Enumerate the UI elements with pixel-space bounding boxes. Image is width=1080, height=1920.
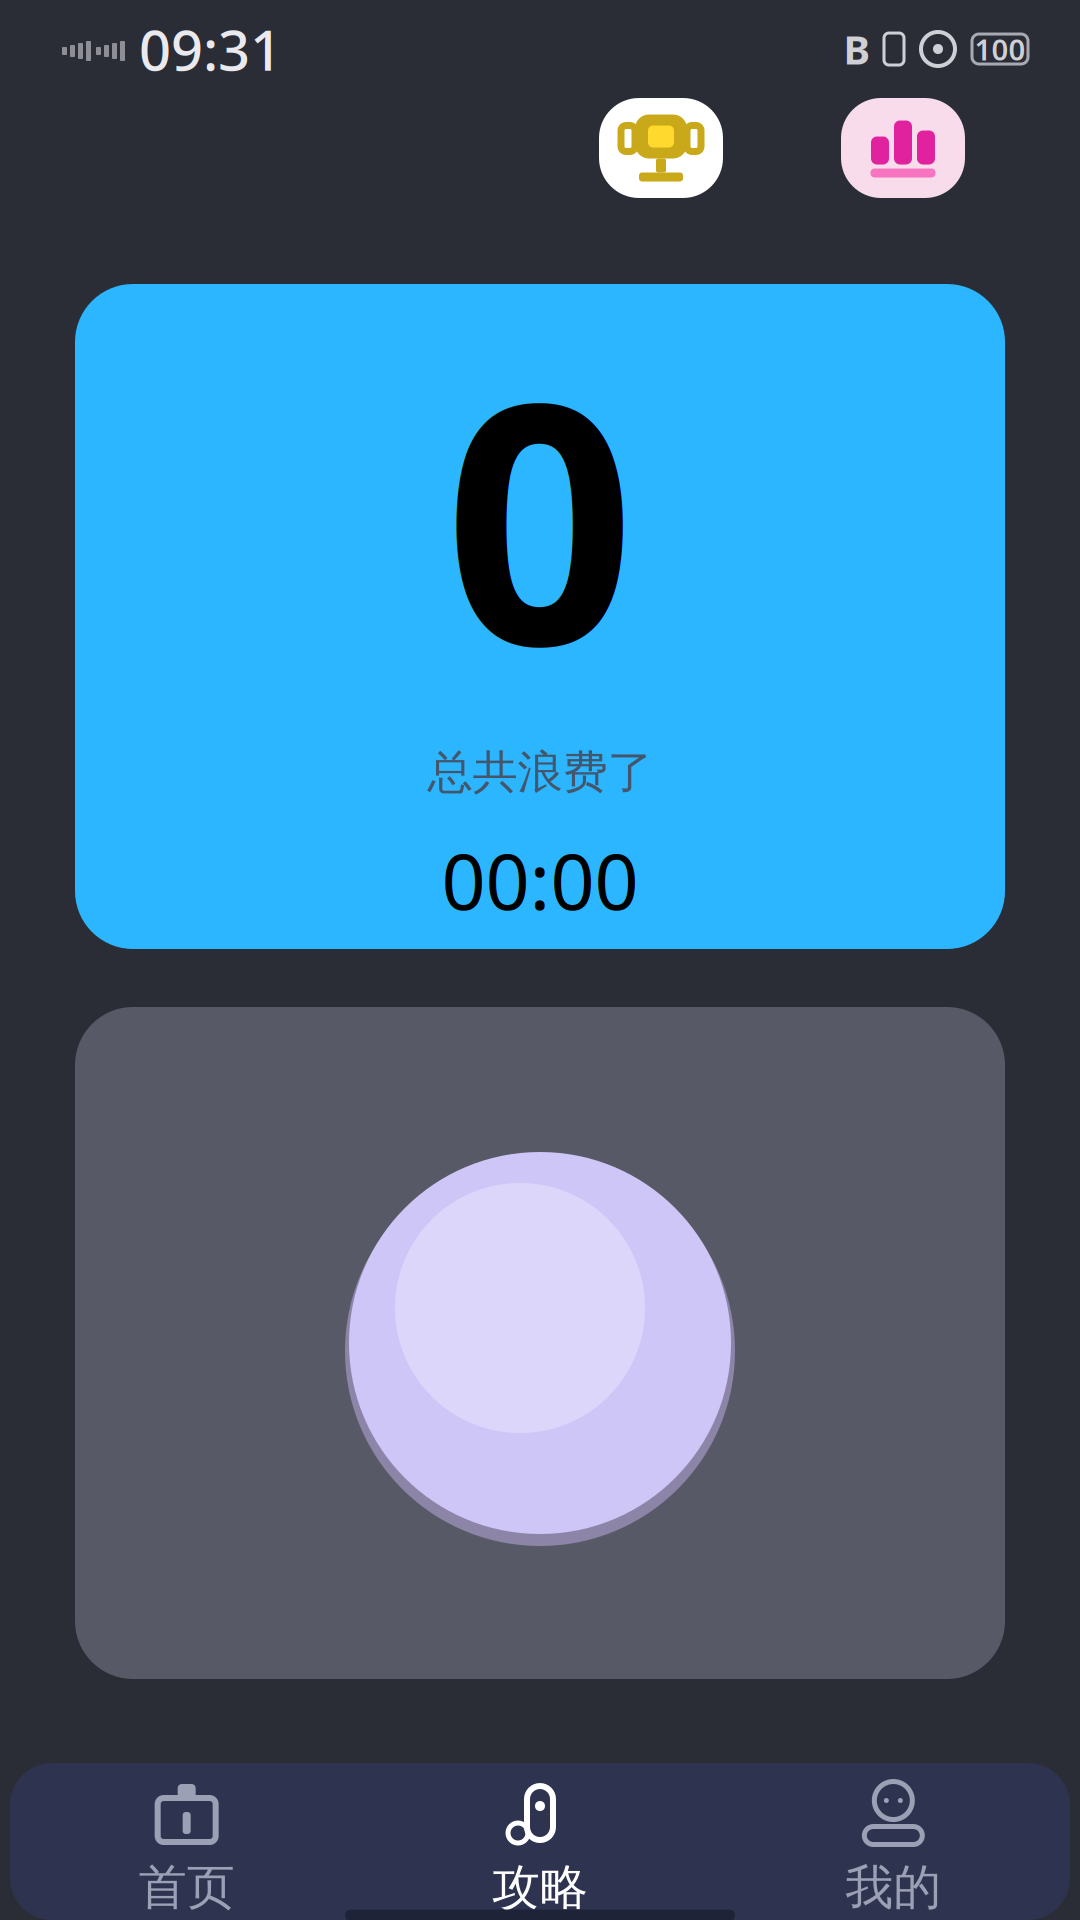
staticText: B xyxy=(843,22,870,75)
button[interactable]: 首页 xyxy=(10,1789,363,1909)
staticText: 总共浪费了 xyxy=(427,745,652,800)
staticText: 09:31 xyxy=(139,12,282,86)
staticText: 100 xyxy=(974,29,1025,68)
staticText: 攻略 xyxy=(492,1858,588,1917)
staticText: 首页 xyxy=(139,1858,235,1917)
button[interactable]: 开始 xyxy=(75,1007,1005,1679)
button[interactable]: 成就 xyxy=(599,98,723,198)
staticText: 我的 xyxy=(845,1858,941,1917)
button[interactable]: 攻略 xyxy=(363,1789,717,1909)
button[interactable]: 我的 xyxy=(717,1789,1070,1909)
staticText: 00:00 xyxy=(441,828,638,931)
staticText: 0 xyxy=(444,294,635,737)
button[interactable]: 统计 xyxy=(841,98,965,198)
